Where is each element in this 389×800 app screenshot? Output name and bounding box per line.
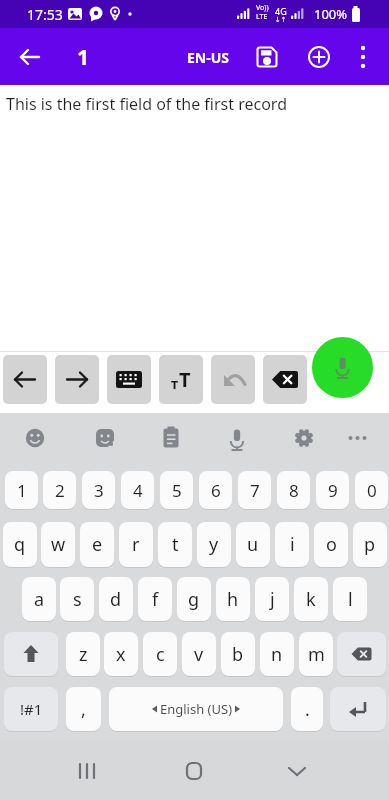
staticText: u <box>247 532 259 557</box>
staticText: m <box>308 642 325 667</box>
button[interactable] <box>337 632 386 676</box>
button[interactable] <box>348 38 386 76</box>
staticText: 7 <box>250 479 260 502</box>
button[interactable]: 2 <box>43 471 76 509</box>
button[interactable]: l <box>333 577 367 621</box>
button[interactable]: o <box>314 522 348 567</box>
button[interactable]: c <box>143 632 177 676</box>
button[interactable] <box>169 746 219 796</box>
button[interactable] <box>107 355 151 404</box>
staticText: s <box>73 587 82 612</box>
button[interactable] <box>3 355 47 404</box>
staticText: This is the first field of the first rec… <box>6 93 287 115</box>
button[interactable]: b <box>221 632 255 676</box>
staticText: v <box>194 642 204 667</box>
staticText: 9 <box>328 479 338 502</box>
button[interactable]: w <box>41 522 75 567</box>
button[interactable]: 6 <box>199 471 232 509</box>
staticText: o <box>326 532 337 557</box>
button[interactable]: EN-US <box>180 42 235 72</box>
staticText: q <box>14 532 26 557</box>
button[interactable]: h <box>216 577 250 621</box>
staticText: p <box>364 532 376 557</box>
button[interactable]: !#1 <box>4 687 58 731</box>
button[interactable] <box>300 38 338 76</box>
button[interactable]: q <box>3 522 37 567</box>
staticText: n <box>271 642 283 667</box>
button[interactable]: y <box>197 522 231 567</box>
button[interactable] <box>10 38 50 76</box>
button[interactable]: t <box>158 522 192 567</box>
staticText: i <box>290 532 295 557</box>
button[interactable] <box>55 355 99 404</box>
staticText: , <box>81 697 86 722</box>
button[interactable]: z <box>66 632 100 676</box>
staticText: j <box>270 587 275 612</box>
staticText: !#1 <box>20 699 43 719</box>
staticText: h <box>227 587 239 612</box>
staticText: . <box>305 697 310 722</box>
button[interactable]: j <box>255 577 289 621</box>
staticText: d <box>110 587 122 612</box>
staticText: EN-US <box>187 48 229 67</box>
button[interactable] <box>263 355 307 404</box>
staticText: 8 <box>289 479 299 502</box>
button[interactable]: d <box>99 577 133 621</box>
staticText: 3 <box>94 479 104 502</box>
button[interactable]: a <box>22 577 56 621</box>
button[interactable]: 1 <box>5 471 38 509</box>
button[interactable]: k <box>294 577 328 621</box>
staticText: w <box>51 532 66 557</box>
button[interactable]: n <box>260 632 294 676</box>
button[interactable] <box>272 746 322 796</box>
button[interactable]: 5 <box>160 471 193 509</box>
staticText: T <box>179 366 191 393</box>
staticText: b <box>232 642 244 667</box>
button[interactable]: i <box>275 522 309 567</box>
button[interactable]: English (US) <box>109 687 283 731</box>
button[interactable] <box>211 355 255 404</box>
staticText: 100% <box>314 5 348 23</box>
button[interactable] <box>62 746 112 796</box>
staticText: 0 <box>367 479 377 502</box>
button[interactable]: p <box>353 522 387 567</box>
button[interactable]: 0 <box>355 471 388 509</box>
staticText: r <box>132 532 140 557</box>
button[interactable]: 4 <box>121 471 154 509</box>
button[interactable]: 7 <box>238 471 271 509</box>
button[interactable]: v <box>182 632 216 676</box>
button[interactable]: u <box>236 522 270 567</box>
staticText: y <box>209 532 219 557</box>
staticText: Vo)) <box>256 3 269 13</box>
button[interactable]: 8 <box>277 471 310 509</box>
staticText: т <box>171 374 179 393</box>
button[interactable]: s <box>60 577 94 621</box>
button[interactable]: . <box>291 687 323 731</box>
button[interactable] <box>248 38 286 76</box>
button[interactable]: 9 <box>316 471 349 509</box>
staticText: g <box>188 587 200 612</box>
button[interactable]: r <box>119 522 153 567</box>
staticText: 1 <box>77 43 90 72</box>
button[interactable]: m <box>299 632 333 676</box>
staticText: k <box>306 587 316 612</box>
button[interactable] <box>4 632 58 676</box>
button[interactable]: 3 <box>82 471 115 509</box>
staticText: ↓↑ <box>275 16 287 24</box>
staticText: 17:53 <box>27 5 63 24</box>
staticText: x <box>116 642 126 667</box>
button[interactable] <box>312 337 373 398</box>
button[interactable]: f <box>138 577 172 621</box>
staticText: e <box>92 532 103 557</box>
button[interactable]: e <box>80 522 114 567</box>
staticText: 2 <box>55 479 65 502</box>
staticText: 4G <box>275 5 287 17</box>
staticText: 4 <box>133 479 143 502</box>
staticText: 6 <box>211 479 221 502</box>
button[interactable]: g <box>177 577 211 621</box>
button[interactable] <box>330 687 386 731</box>
button[interactable]: т <box>159 355 203 404</box>
staticText: a <box>34 587 45 612</box>
button[interactable]: x <box>104 632 138 676</box>
button[interactable]: , <box>66 687 101 731</box>
